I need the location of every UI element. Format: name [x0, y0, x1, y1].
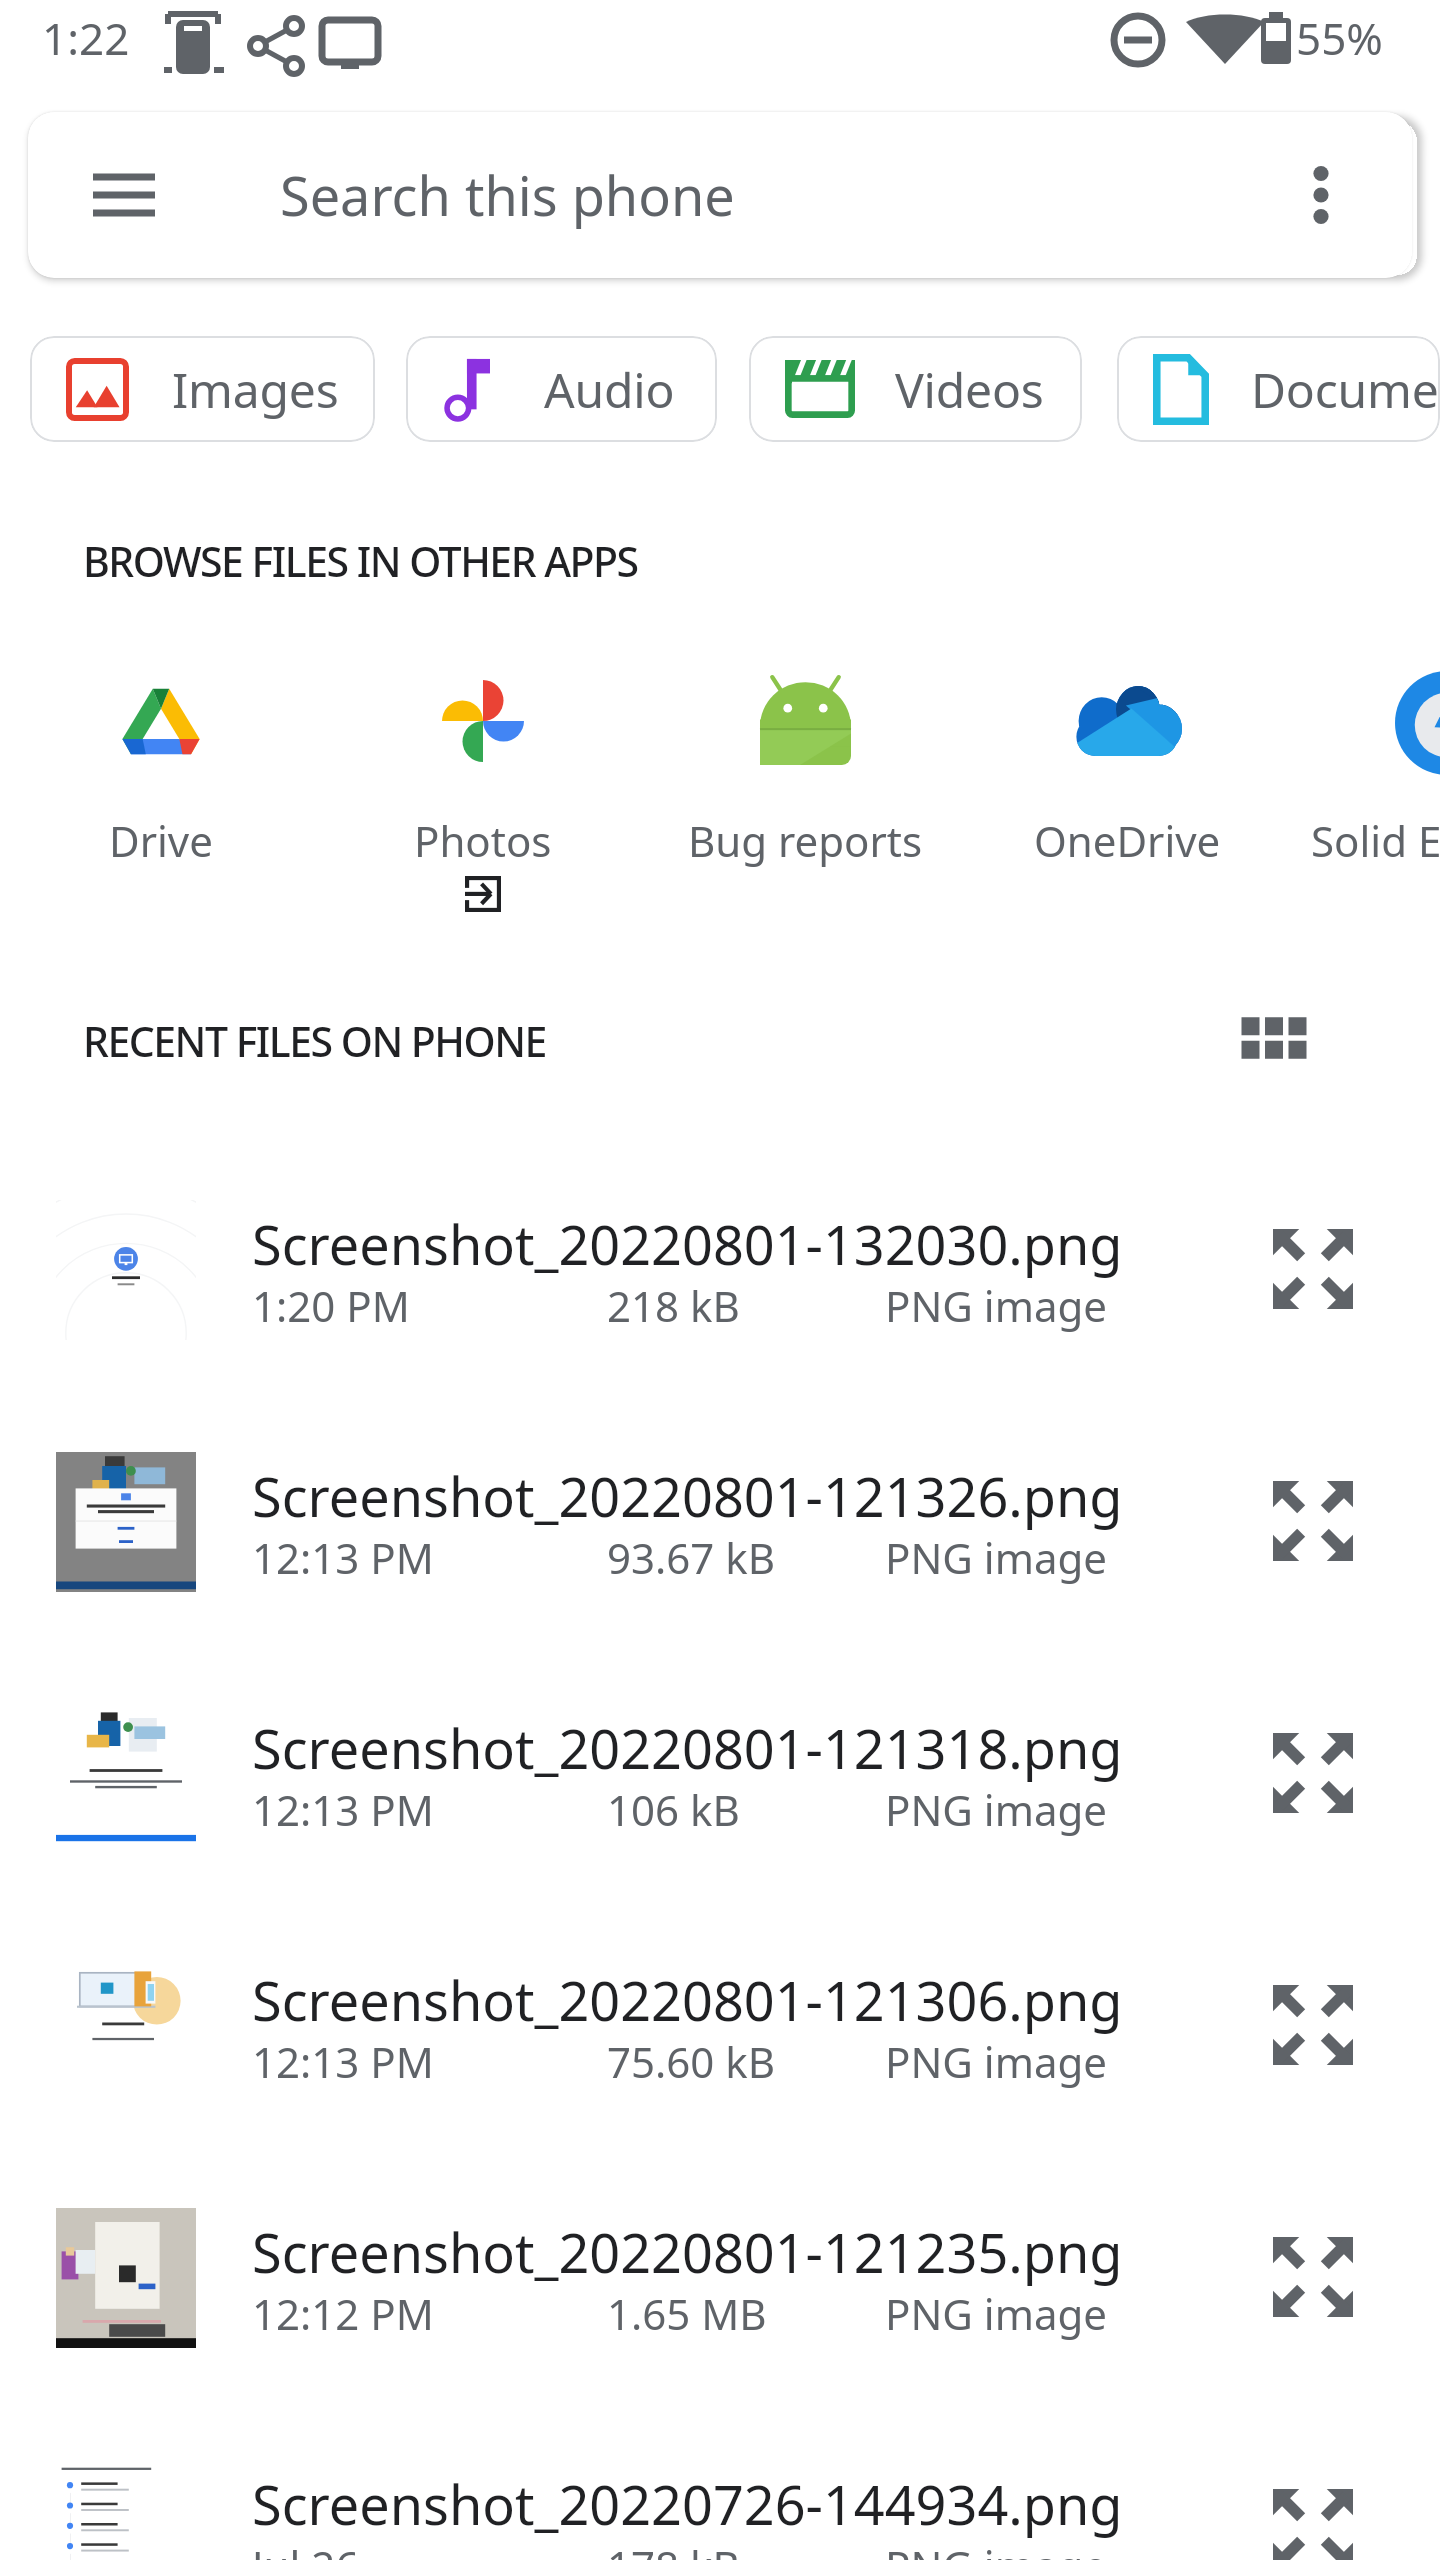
button[interactable]: OneDrive: [966, 660, 1288, 890]
staticText: 178 kB: [607, 2537, 740, 2560]
staticText: 1:20 PM: [252, 1277, 410, 1334]
staticText: Documents: [1251, 357, 1440, 422]
button[interactable]: Solid Explorer: [1286, 660, 1440, 890]
staticText: PNG image: [885, 2537, 1108, 2560]
staticText: Screenshot_20220801-121326.png: [252, 1459, 1123, 1533]
button[interactable]: Switch to grid view: [1229, 993, 1319, 1083]
staticText: 55%: [1296, 8, 1383, 68]
button[interactable]: Expand preview: [1273, 1985, 1353, 2065]
button[interactable]: Screenshot_20220801-121326.png: [0, 1434, 1440, 1686]
button[interactable]: Expand preview: [1273, 2237, 1353, 2317]
staticText: 106 kB: [607, 1781, 740, 1838]
button[interactable]: Expand preview: [1273, 1481, 1353, 1561]
button[interactable]: Screenshot_20220801-121235.png: [0, 2190, 1440, 2442]
staticText: 75.60 kB: [607, 2033, 776, 2090]
staticText: PNG image: [885, 1529, 1108, 1586]
staticText: Drive: [109, 812, 213, 869]
button[interactable]: Audio: [406, 336, 717, 442]
button[interactable]: Open navigation menu: [69, 140, 179, 250]
button[interactable]: Videos: [749, 336, 1082, 442]
staticText: Bug reports: [688, 812, 923, 869]
staticText: PNG image: [885, 2033, 1108, 2090]
staticText: 93.67 kB: [607, 1529, 776, 1586]
staticText: 1.65 MB: [607, 2285, 767, 2342]
staticText: OneDrive: [1034, 812, 1221, 869]
staticText: 12:12 PM: [252, 2285, 434, 2342]
button[interactable]: Photos: [322, 660, 644, 890]
staticText: Screenshot_20220726-144934.png: [252, 2467, 1123, 2541]
button[interactable]: Expand preview: [1273, 1733, 1353, 1813]
other: Opens in another app: [465, 876, 501, 912]
staticText: 218 kB: [607, 1277, 740, 1334]
staticText: Jul 26: [252, 2537, 360, 2560]
staticText: Images: [172, 357, 339, 422]
staticText: 12:13 PM: [252, 2033, 434, 2090]
staticText: Search this phone: [280, 158, 735, 232]
staticText: PNG image: [885, 1781, 1108, 1838]
button[interactable]: Screenshot_20220801-121306.png: [0, 1938, 1440, 2190]
staticText: Photos: [414, 812, 552, 869]
staticText: Screenshot_20220801-121318.png: [252, 1711, 1123, 1785]
button[interactable]: More options: [1271, 145, 1371, 245]
button[interactable]: Expand preview: [1273, 2489, 1353, 2560]
staticText: RECENT FILES ON PHONE: [83, 1013, 546, 1069]
button[interactable]: Screenshot_20220801-121318.png: [0, 1686, 1440, 1938]
staticText: 12:13 PM: [252, 1781, 434, 1838]
staticText: Videos: [895, 357, 1044, 422]
button[interactable]: Drive: [0, 660, 322, 890]
button[interactable]: Documents: [1117, 336, 1440, 442]
button[interactable]: Screenshot_20220801-132030.png: [0, 1182, 1440, 1434]
staticText: PNG image: [885, 2285, 1108, 2342]
staticText: 12:13 PM: [252, 1529, 434, 1586]
staticText: BROWSE FILES IN OTHER APPS: [83, 533, 638, 589]
button[interactable]: Images: [30, 336, 375, 442]
staticText: Screenshot_20220801-132030.png: [252, 1207, 1123, 1281]
button[interactable]: Screenshot_20220726-144934.png: [0, 2442, 1440, 2560]
staticText: PNG image: [885, 1277, 1108, 1334]
staticText: Solid Explorer: [1311, 812, 1440, 869]
staticText: Screenshot_20220801-121235.png: [252, 2215, 1123, 2289]
button[interactable]: Expand preview: [1273, 1229, 1353, 1309]
staticText: Screenshot_20220801-121306.png: [252, 1963, 1123, 2037]
staticText: 1:22: [42, 8, 130, 68]
button[interactable]: Bug reports: [644, 660, 966, 890]
button[interactable]: Open navigation menu: [28, 112, 1412, 278]
staticText: Audio: [544, 357, 675, 422]
